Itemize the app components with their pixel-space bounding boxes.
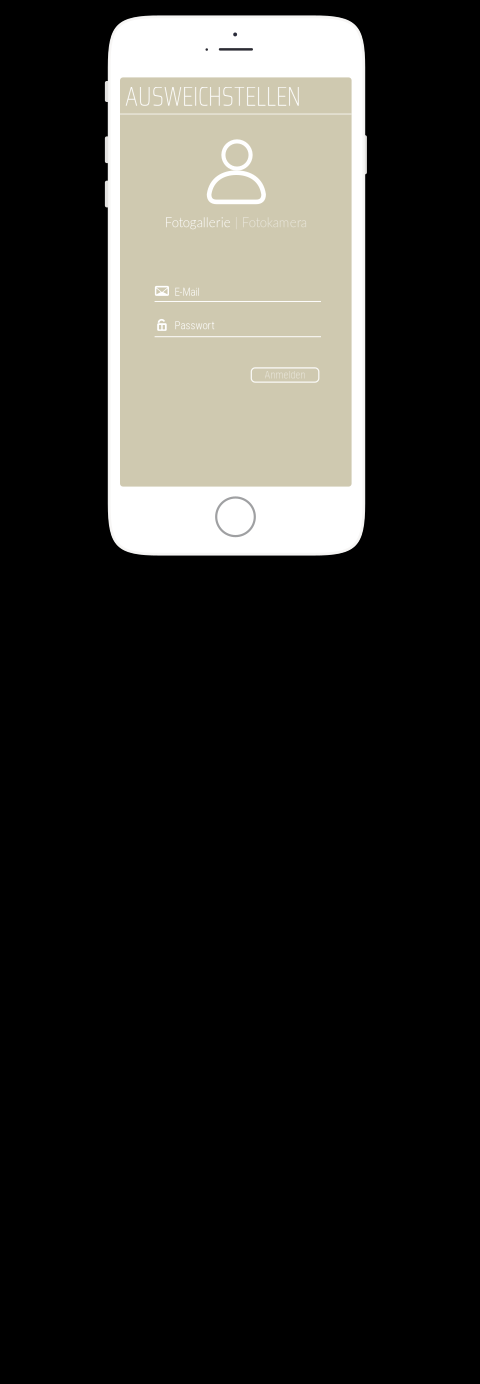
staticText: Anmelden [265,369,306,381]
staticText: E-Mail [175,286,200,298]
staticText: Passwort [175,319,215,332]
button[interactable]: Passwort [120,77,352,487]
staticText: Fotokamera [242,214,307,230]
staticText: AUSWEICHSTELLEN [125,76,301,117]
staticText: Fotogallerie [165,214,231,230]
button[interactable]: Anmelden [251,368,319,382]
button[interactable]: E-Mail [120,77,352,487]
staticText: | [231,214,242,230]
